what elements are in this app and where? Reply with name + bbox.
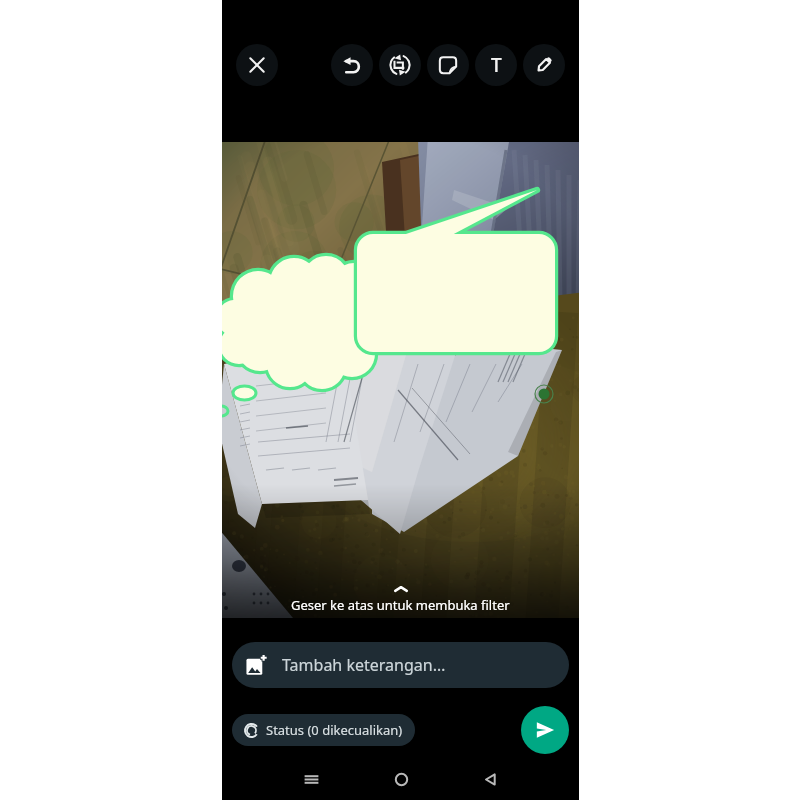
staticText: Geser ke atas untuk membuka filter [291, 596, 510, 614]
button[interactable]: Close [236, 44, 278, 86]
staticText: Tambah keterangan… [282, 654, 446, 676]
button[interactable]: Crop and rotate [379, 44, 421, 86]
staticText: Status (0 dikecualikan) [266, 721, 403, 739]
button[interactable]: Recent apps [290, 758, 332, 800]
button[interactable]: Status (0 dikecualikan) [232, 714, 415, 746]
button[interactable]: Back [469, 758, 511, 800]
button[interactable]: Sticker [427, 44, 469, 86]
button[interactable]: Text [475, 44, 517, 86]
button[interactable]: Geser ke atas untuk membuka filter [222, 584, 579, 618]
button[interactable]: Home [380, 758, 422, 800]
button[interactable]: Undo [331, 44, 373, 86]
button[interactable]: Send [521, 706, 569, 754]
staticText: T [491, 52, 502, 78]
button[interactable]: Draw [523, 44, 565, 86]
button[interactable]: Tambah keterangan… [232, 642, 569, 688]
